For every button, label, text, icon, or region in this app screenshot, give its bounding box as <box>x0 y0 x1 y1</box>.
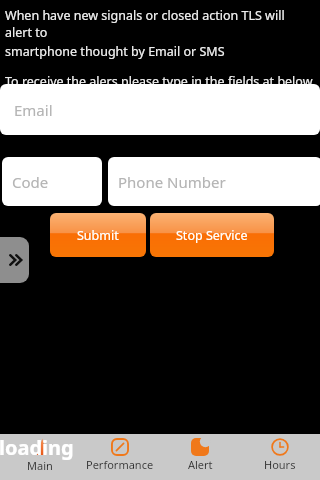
staticText: Email <box>14 100 53 120</box>
button[interactable]: Stop Service <box>150 213 274 257</box>
staticText: Submit <box>77 227 119 244</box>
staticText: Phone Number <box>118 172 226 192</box>
staticText: Main <box>27 458 53 473</box>
staticText: Performance <box>86 457 154 472</box>
button[interactable]: Code <box>2 157 102 206</box>
button[interactable]: Submit <box>50 213 146 257</box>
button[interactable]: Hours <box>240 434 320 480</box>
staticText: When have new signals or closed action T… <box>5 7 314 41</box>
button[interactable]: Phone Number <box>108 157 320 206</box>
staticText: Alert <box>188 457 213 472</box>
button[interactable]: Alert <box>160 434 240 480</box>
button[interactable]: Email <box>0 84 320 135</box>
button[interactable]: Main <box>0 434 80 480</box>
staticText: To receive the alers please type in the … <box>5 73 313 90</box>
button[interactable]: Performance <box>80 434 160 480</box>
staticText: loading <box>0 434 74 461</box>
staticText: Code <box>12 172 49 192</box>
staticText: Hours <box>264 457 296 472</box>
staticText: Stop Service <box>176 227 248 244</box>
staticText: smartphone thought by Email or SMS <box>5 43 225 60</box>
button[interactable]: Open side panel <box>0 237 29 283</box>
